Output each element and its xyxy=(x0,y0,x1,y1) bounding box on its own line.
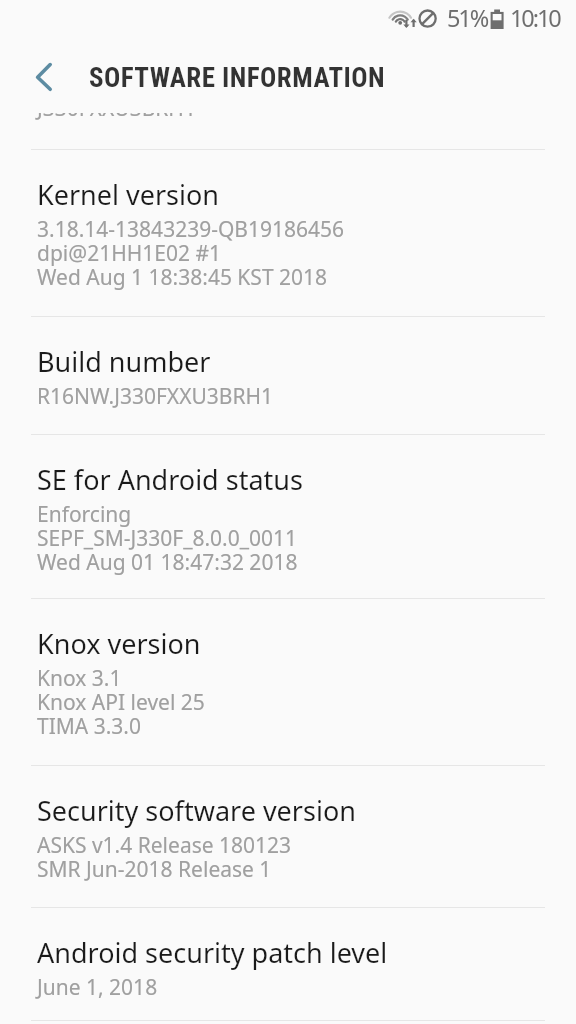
button[interactable]: J330FXXU3BRH1 xyxy=(0,60,576,149)
staticText: TIMA 3.3.0 xyxy=(37,712,142,741)
staticText: 10:10 xyxy=(510,2,560,34)
staticText: 3.18.14-13843239-QB19186456 xyxy=(37,215,345,244)
button[interactable]: Navigate up xyxy=(22,56,66,100)
button[interactable]: Kernel version xyxy=(0,149,576,316)
staticText: Knox 3.1 xyxy=(37,664,122,693)
button[interactable]: Android security patch level xyxy=(0,907,576,1020)
staticText: SOFTWARE INFORMATION xyxy=(89,62,385,94)
staticText: SEPF_SM-J330F_8.0.0_0011 xyxy=(37,524,298,553)
button[interactable]: Security software version xyxy=(0,765,576,907)
staticText: June 1, 2018 xyxy=(37,973,158,1002)
staticText: Knox API level 25 xyxy=(37,688,205,717)
staticText: ASKS v1.4 Release 180123 xyxy=(37,831,292,860)
button[interactable]: Build number xyxy=(0,316,576,434)
staticText: Wed Aug 01 18:47:32 2018 xyxy=(37,548,298,577)
staticText: Knox version xyxy=(37,625,201,662)
button[interactable]: Knox version xyxy=(0,598,576,765)
staticText: Build number xyxy=(37,343,211,380)
button[interactable]: SE for Android status xyxy=(0,434,576,598)
staticText: Wed Aug 1 18:38:45 KST 2018 xyxy=(37,263,328,292)
staticText: R16NW.J330FXXU3BRH1 xyxy=(37,382,274,411)
staticText: J330FXXU3BRH1 xyxy=(37,94,196,123)
staticText: Security software version xyxy=(37,792,356,829)
staticText: SMR Jun-2018 Release 1 xyxy=(37,855,272,884)
staticText: dpi@21HH1E02 #1 xyxy=(37,239,222,268)
staticText: Enforcing xyxy=(37,500,132,529)
staticText: SE for Android status xyxy=(37,461,303,498)
staticText: 51% xyxy=(447,2,488,34)
staticText: Android security patch level xyxy=(37,934,388,971)
staticText: Kernel version xyxy=(37,176,220,213)
